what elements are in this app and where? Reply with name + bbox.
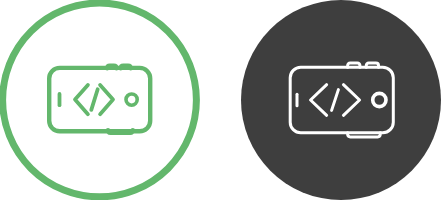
button[interactable]: Code device icon [0,0,442,200]
